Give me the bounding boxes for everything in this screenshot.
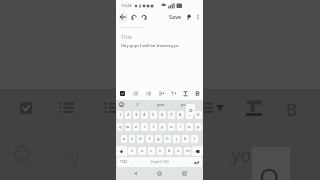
button[interactable]: 8 bbox=[177, 111, 184, 119]
button[interactable]: , bbox=[129, 157, 135, 167]
staticText: Save bbox=[169, 13, 182, 20]
button[interactable]: Underline bbox=[179, 87, 191, 100]
staticText: 3 bbox=[135, 112, 138, 118]
staticText: 5 bbox=[152, 112, 155, 118]
staticText: you bbox=[157, 102, 165, 108]
button[interactable]: l bbox=[191, 135, 198, 143]
button[interactable]: d bbox=[137, 135, 144, 143]
button[interactable]: Home bbox=[154, 168, 165, 179]
staticText: x bbox=[141, 148, 144, 154]
staticText: n bbox=[177, 148, 180, 154]
staticText: e bbox=[135, 124, 138, 130]
staticText: v bbox=[159, 148, 162, 154]
button[interactable]: I bbox=[126, 100, 149, 109]
button[interactable]: 4 bbox=[141, 111, 148, 119]
staticText: w bbox=[126, 124, 130, 130]
button[interactable]: Undo bbox=[129, 12, 138, 21]
button[interactable]: 7 bbox=[168, 111, 175, 119]
staticText: b bbox=[168, 148, 171, 154]
staticText: t bbox=[153, 124, 155, 130]
staticText: . bbox=[186, 160, 188, 165]
button[interactable]: 1 bbox=[117, 111, 123, 119]
staticText: y bbox=[161, 124, 164, 130]
button[interactable]: Bold bbox=[191, 87, 203, 100]
button[interactable]: c bbox=[148, 147, 155, 155]
staticText: 9 bbox=[188, 112, 191, 118]
button[interactable]: Recents bbox=[179, 168, 190, 179]
button[interactable]: z bbox=[128, 147, 136, 155]
button[interactable]: Redo bbox=[139, 12, 148, 21]
button[interactable]: u bbox=[168, 123, 175, 131]
button[interactable]: w bbox=[125, 123, 131, 131]
button[interactable]: Back bbox=[130, 168, 141, 179]
button[interactable]: k bbox=[182, 135, 189, 143]
button[interactable]: Bulleted list bbox=[129, 87, 142, 100]
button[interactable]: n bbox=[175, 147, 182, 155]
staticText: B bbox=[286, 98, 298, 121]
button[interactable]: Backspace bbox=[192, 146, 203, 156]
staticText: ?123 bbox=[120, 160, 127, 164]
button[interactable]: a bbox=[121, 135, 127, 143]
button[interactable]: j bbox=[173, 135, 180, 143]
staticText: 4 bbox=[143, 112, 146, 118]
button[interactable]: Font size bbox=[167, 87, 179, 100]
button[interactable]: x bbox=[138, 147, 146, 155]
staticText: yo bbox=[231, 143, 252, 168]
button[interactable]: r bbox=[141, 123, 148, 131]
staticText: yo bbox=[181, 102, 186, 108]
staticText: 10:24 bbox=[121, 3, 132, 9]
button[interactable]: Emoji bbox=[116, 100, 126, 109]
button[interactable]: s bbox=[129, 135, 135, 143]
staticText: 7 bbox=[170, 112, 173, 118]
button[interactable]: y bbox=[159, 123, 166, 131]
staticText: Hey guys I will be showing yo bbox=[121, 43, 179, 49]
staticText: a bbox=[123, 136, 126, 142]
staticText: s bbox=[131, 136, 134, 142]
button[interactable]: Pin note bbox=[184, 12, 193, 21]
staticText: u bbox=[170, 124, 173, 130]
button[interactable]: 6 bbox=[159, 111, 166, 119]
button[interactable]: i bbox=[177, 123, 184, 131]
button[interactable]: f bbox=[146, 135, 153, 143]
button[interactable]: yo bbox=[172, 100, 195, 109]
button[interactable]: More options bbox=[193, 12, 202, 21]
button[interactable]: Back bbox=[118, 12, 128, 22]
staticText: l bbox=[194, 136, 196, 142]
staticText: i bbox=[180, 124, 182, 130]
button[interactable]: 3 bbox=[133, 111, 139, 119]
button[interactable]: 0 bbox=[195, 111, 202, 119]
button[interactable]: you bbox=[149, 100, 172, 109]
button[interactable]: Numbered list bbox=[142, 87, 155, 100]
button[interactable]: 2 bbox=[125, 111, 131, 119]
button[interactable]: g bbox=[155, 135, 162, 143]
button[interactable]: Save bbox=[168, 12, 183, 21]
button[interactable]: v bbox=[157, 147, 164, 155]
button[interactable]: m bbox=[184, 147, 191, 155]
button[interactable]: q bbox=[117, 123, 123, 131]
button[interactable]: h bbox=[164, 135, 171, 143]
button[interactable]: o bbox=[186, 123, 193, 131]
button[interactable] bbox=[190, 157, 202, 167]
staticText: c bbox=[150, 148, 153, 154]
staticText: English (US) bbox=[151, 160, 169, 164]
button[interactable]: p bbox=[195, 123, 202, 131]
button[interactable]: 9 bbox=[186, 111, 193, 119]
button[interactable]: b bbox=[166, 147, 173, 155]
button[interactable]: English (US) bbox=[135, 157, 184, 167]
staticText: 0 bbox=[197, 112, 200, 118]
button[interactable]: Indent bbox=[155, 87, 167, 100]
staticText: Title bbox=[121, 33, 132, 40]
staticText: 2 bbox=[127, 112, 130, 118]
staticText: , bbox=[131, 160, 133, 165]
button[interactable]: . bbox=[184, 157, 190, 167]
button[interactable]: Checkbox bbox=[116, 87, 129, 100]
button[interactable]: Shift bbox=[116, 146, 127, 156]
staticText: h bbox=[166, 136, 169, 142]
staticText: g bbox=[157, 136, 160, 142]
button[interactable]: ?123 bbox=[117, 157, 129, 167]
button[interactable]: e bbox=[133, 123, 139, 131]
button[interactable]: 5 bbox=[150, 111, 157, 119]
staticText: z bbox=[131, 148, 133, 154]
button[interactable]: t bbox=[150, 123, 157, 131]
